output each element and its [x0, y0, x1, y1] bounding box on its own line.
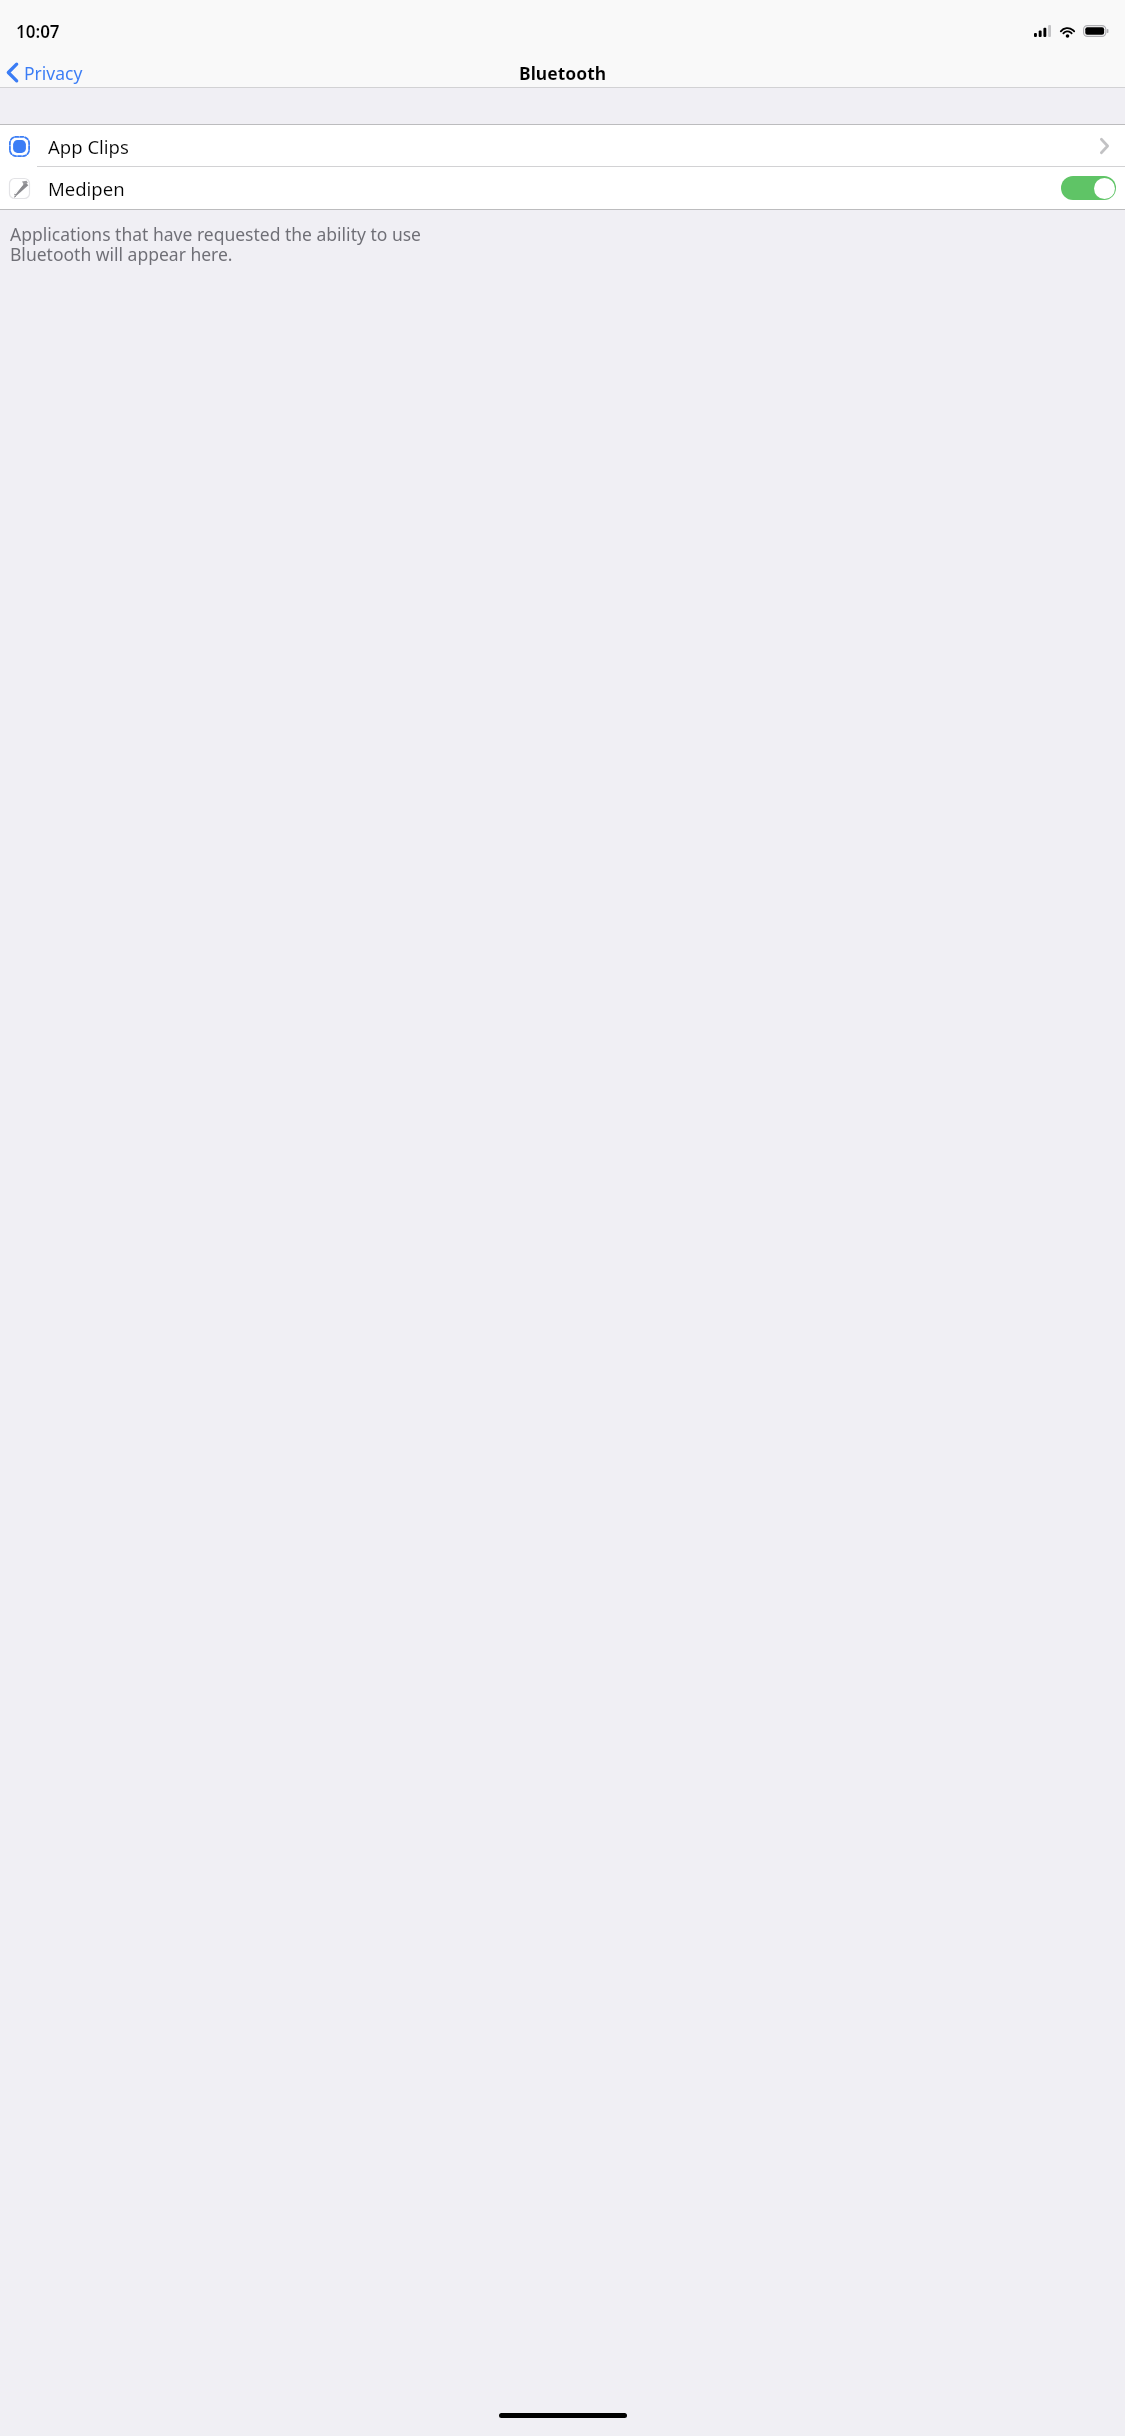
staticText: Applications that have requested the abi… [10, 222, 421, 267]
button[interactable]: Medipen Bluetooth toggle, on [1061, 176, 1116, 200]
button[interactable]: Privacy [0, 58, 91, 87]
staticText: Privacy [24, 61, 83, 84]
staticText: Medipen [48, 176, 125, 201]
staticText: 10:07 [16, 20, 60, 43]
staticText: App Clips [48, 134, 129, 159]
button[interactable]: App Clips [0, 125, 1125, 167]
staticText: Bluetooth [519, 61, 607, 85]
button[interactable]: Medipen [0, 167, 1125, 209]
